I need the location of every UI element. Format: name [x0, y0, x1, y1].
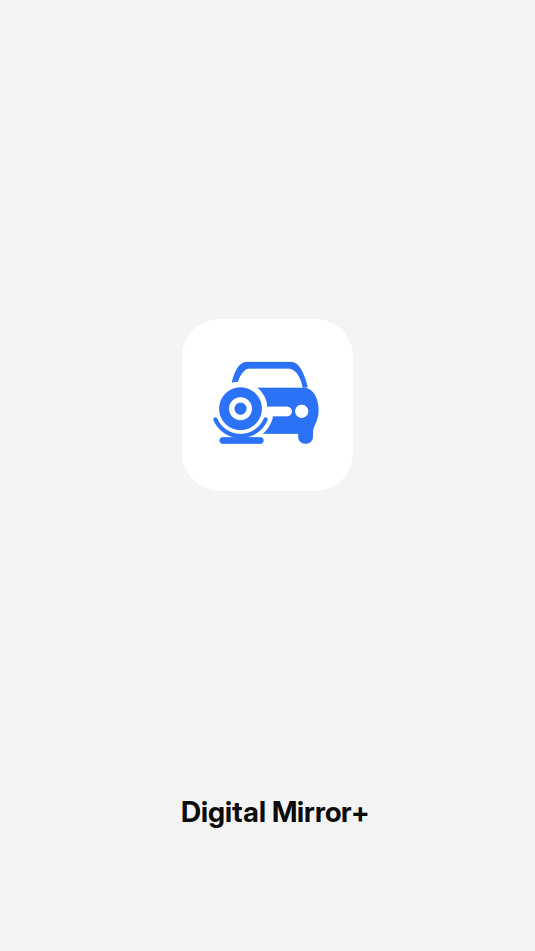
- staticText: Digital Mirror+: [181, 794, 370, 829]
